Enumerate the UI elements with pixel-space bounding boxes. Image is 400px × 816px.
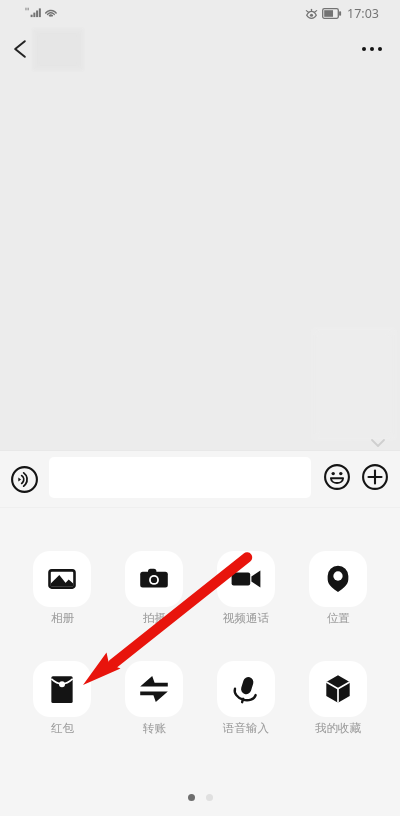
staticText: 我的收藏 xyxy=(315,721,361,735)
button[interactable]: 拍摄 xyxy=(125,551,183,625)
button[interactable]: Back xyxy=(0,26,40,72)
button[interactable]: 相册 xyxy=(33,551,91,625)
staticText: 拍摄 xyxy=(143,611,166,625)
button[interactable]: 位置 xyxy=(309,551,367,625)
staticText: 视频通话 xyxy=(223,611,269,625)
button[interactable]: 红包 xyxy=(33,661,91,735)
staticText: 相册 xyxy=(51,611,74,625)
button[interactable]: Voice input xyxy=(6,461,42,497)
button[interactable]: Emoji xyxy=(318,458,356,496)
button[interactable]: 视频通话 xyxy=(217,551,275,625)
staticText: 17:03 xyxy=(347,5,379,22)
button[interactable]: More functions xyxy=(356,458,394,496)
staticText: 语音输入 xyxy=(223,721,269,735)
button[interactable]: More options xyxy=(351,26,393,72)
button[interactable]: 我的收藏 xyxy=(309,661,367,735)
button[interactable]: 转账 xyxy=(125,661,183,735)
staticText: 转账 xyxy=(143,721,166,735)
button[interactable]: 语音输入 xyxy=(217,661,275,735)
staticText: 红包 xyxy=(51,721,74,735)
staticText: 位置 xyxy=(327,611,350,625)
